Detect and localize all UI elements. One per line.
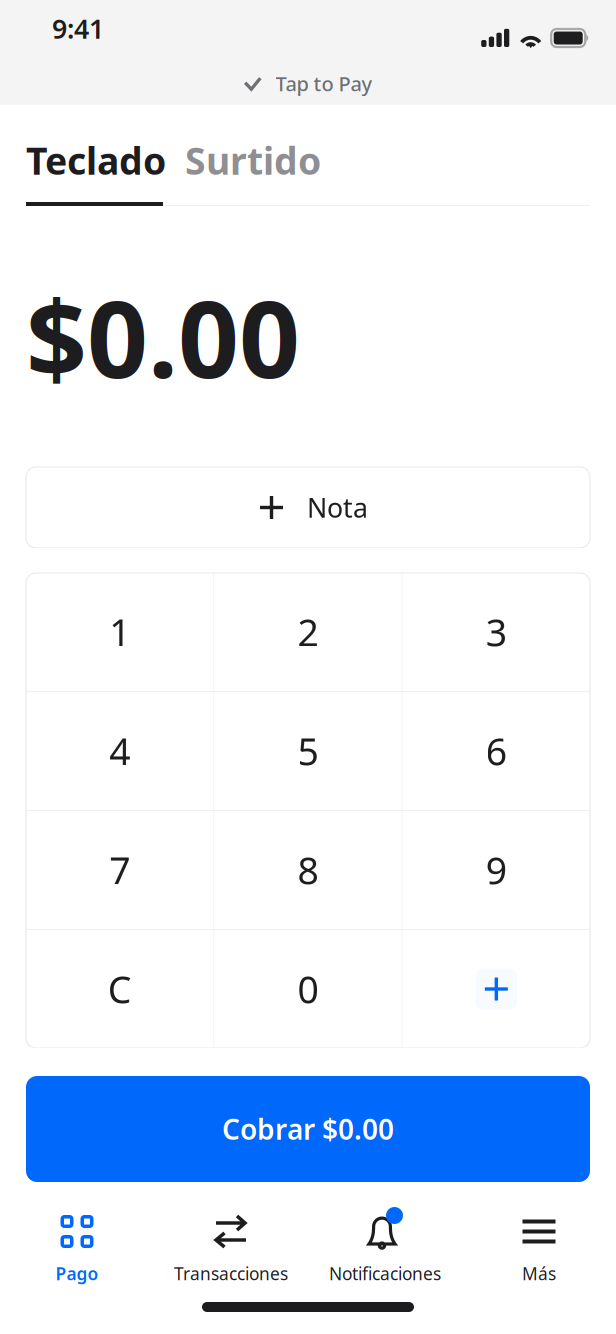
button[interactable]: Nota [26,467,590,548]
button[interactable]: Cobrar $0.00 [26,1076,590,1182]
staticText: 4 [109,726,130,776]
staticText: Más [522,1262,556,1285]
staticText: 1 [109,607,130,657]
staticText: 3 [486,607,507,657]
button[interactable]: 8 [214,811,402,929]
button[interactable]: 6 [403,692,590,810]
staticText: Nota [307,490,368,525]
button[interactable]: 5 [214,692,402,810]
staticText: 2 [297,607,318,657]
button[interactable]: 7 [26,811,213,929]
button[interactable]: Más [462,1213,616,1285]
staticText: 6 [486,726,507,776]
staticText: Surtido [185,135,321,185]
button[interactable]: 9 [403,811,590,929]
staticText: Transacciones [174,1262,288,1285]
button[interactable]: 2 [214,573,402,691]
button[interactable]: C [26,930,213,1048]
button[interactable] [403,930,590,1048]
staticText: 9 [486,845,507,895]
staticText: Teclado [26,135,166,185]
staticText: 0 [297,964,318,1014]
button[interactable]: 0 [214,930,402,1048]
staticText: 7 [109,845,130,895]
staticText: Notificaciones [329,1262,441,1285]
staticText: C [108,964,132,1014]
staticText: 8 [297,845,318,895]
button[interactable]: 1 [26,573,213,691]
staticText: 9:41 [52,11,104,46]
button[interactable]: Notificaciones [308,1213,462,1285]
button[interactable]: 3 [403,573,590,691]
staticText: 5 [297,726,318,776]
button[interactable]: Pago [0,1213,154,1285]
button[interactable]: Surtido [166,135,321,206]
staticText: Cobrar $0.00 [222,1110,394,1148]
staticText: $0.00 [26,266,300,407]
button[interactable]: Teclado [26,135,166,206]
button[interactable]: Transacciones [154,1213,308,1285]
staticText: Pago [55,1262,98,1285]
button[interactable]: 4 [26,692,213,810]
staticText: Tap to Pay [275,70,372,97]
